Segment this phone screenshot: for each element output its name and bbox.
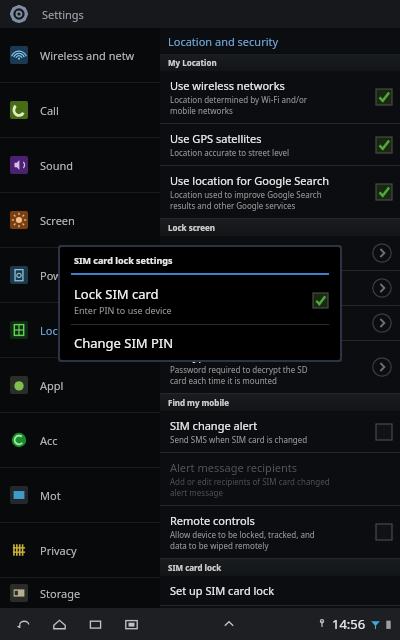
staticText: Set up SIM card lock	[170, 583, 275, 598]
button[interactable]: Use GPS satellites	[160, 124, 400, 165]
staticText: Settings	[42, 7, 84, 22]
staticText: Location accurate to street level	[170, 147, 290, 158]
staticText: 14:56	[332, 615, 366, 633]
button[interactable]: Unchecked	[376, 424, 392, 440]
staticText: Acc	[40, 433, 58, 448]
button[interactable]: Open	[372, 357, 392, 377]
staticText: Lock SIM card	[74, 285, 159, 303]
staticText: SIM card lock	[168, 562, 222, 573]
staticText: Change SIM PIN	[74, 334, 174, 352]
button[interactable]: Call	[0, 83, 160, 137]
button[interactable]: Checked	[313, 293, 328, 308]
button[interactable]: Power saving mod	[0, 248, 160, 302]
staticText: Privacy	[40, 543, 77, 558]
staticText: Send SMS when SIM card is changed	[170, 434, 308, 445]
button[interactable]: Location and sec	[0, 303, 160, 357]
staticText: Screen	[40, 213, 75, 228]
button[interactable]: Back	[12, 613, 34, 635]
staticText: SIM card lock settings	[74, 254, 173, 266]
button[interactable]: Checked	[376, 184, 392, 200]
staticText: Location determined by Wi-Fi and/or mobi…	[170, 94, 308, 116]
staticText: My Location	[168, 57, 217, 68]
staticText: Use GPS satellites	[170, 131, 262, 146]
button[interactable]: Set up SIM card lock	[160, 576, 400, 605]
staticText: Mot	[40, 488, 61, 503]
button[interactable]: Home	[48, 613, 70, 635]
button[interactable]: Wireless and netw	[0, 28, 160, 82]
staticText: Lock screen	[168, 222, 215, 233]
button[interactable]: SIM change alert	[160, 411, 400, 452]
button[interactable]: Open	[160, 271, 400, 305]
staticText: Find my mobile	[168, 397, 229, 408]
staticText: Location and security	[168, 34, 279, 49]
button[interactable]: Appl	[0, 358, 160, 412]
staticText: Allow device to be locked, tracked, and …	[170, 529, 315, 551]
staticText: Location and sec	[40, 323, 127, 338]
button[interactable]: Checked	[376, 137, 392, 153]
button[interactable]: Encrypt SD card	[160, 341, 400, 393]
staticText: Add or edit recipients of SIM card chang…	[170, 476, 330, 498]
staticText: Remote controls	[170, 513, 255, 528]
button[interactable]: Open	[160, 306, 400, 340]
button[interactable]: Unchecked	[376, 524, 392, 540]
button[interactable]: Change SIM PIN	[60, 325, 340, 360]
button[interactable]: Sound	[0, 138, 160, 192]
staticText: Enter PIN to use device	[74, 304, 172, 316]
button[interactable]: Privacy	[0, 523, 160, 577]
button[interactable]: Open	[372, 313, 392, 333]
staticText: Use location for Google Search	[170, 173, 330, 188]
staticText: Password required to decrypt the SD card…	[170, 364, 308, 386]
button[interactable]: Acc	[0, 413, 160, 467]
button[interactable]: Alert message recipients	[160, 453, 400, 505]
button[interactable]: Lock SIM card	[60, 275, 340, 324]
button[interactable]: Open	[372, 278, 392, 298]
button[interactable]: Checked	[376, 89, 392, 105]
staticText: Configure lock screen	[170, 246, 282, 261]
button[interactable]: Screen	[0, 193, 160, 247]
staticText: Call	[40, 103, 59, 118]
button[interactable]: Use wireless networks	[160, 71, 400, 123]
button[interactable]: Use location for Google Search	[160, 166, 400, 218]
button[interactable]: Open	[372, 243, 392, 263]
other: Settings	[10, 5, 28, 23]
staticText: SIM change alert	[170, 418, 258, 433]
staticText: Alert message recipients	[170, 460, 297, 475]
staticText: Appl	[40, 378, 64, 393]
button[interactable]: Mot	[0, 468, 160, 522]
button[interactable]: Remote controls	[160, 506, 400, 558]
staticText: Power saving mod	[40, 268, 136, 283]
staticText: Location used to improve Google Search r…	[170, 189, 322, 211]
staticText: Encrypt SD card	[170, 348, 252, 363]
staticText: Use wireless networks	[170, 78, 285, 93]
button[interactable]: Recents	[84, 613, 106, 635]
button[interactable]: Screenshot	[120, 613, 142, 635]
staticText: Wireless and netw	[40, 48, 135, 63]
staticText: Storage	[40, 586, 81, 601]
button[interactable]: Configure lock screen	[160, 236, 400, 270]
button[interactable]: Storage	[0, 578, 160, 608]
staticText: Sound	[40, 158, 74, 173]
